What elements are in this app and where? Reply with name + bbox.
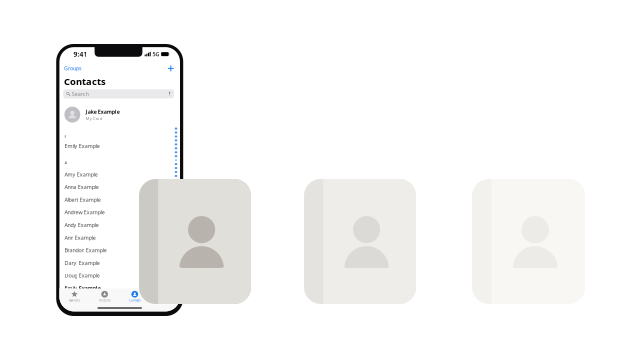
staticText: Contacts <box>64 75 106 87</box>
staticText: Example <box>80 196 101 203</box>
staticText: Contacts <box>129 299 140 302</box>
staticText: Doug <box>64 272 77 279</box>
button[interactable]: Albert <box>59 193 180 206</box>
staticText: Jake Example <box>86 108 120 115</box>
staticText: Groups <box>64 65 82 72</box>
staticText: Andrew <box>64 209 82 216</box>
staticText: Emily <box>64 142 77 150</box>
button[interactable]: Anna <box>59 181 180 193</box>
button[interactable]: Favorites <box>59 288 89 305</box>
staticText: Emily <box>64 285 77 292</box>
staticText: Example <box>77 171 98 178</box>
staticText: Daryl <box>64 259 77 266</box>
staticText: A <box>64 160 67 165</box>
button[interactable]: Keypad <box>150 288 180 305</box>
staticText: 5G <box>152 51 159 58</box>
button[interactable]: Groups <box>64 64 90 72</box>
staticText: Example <box>79 272 100 279</box>
staticText: 9:41 <box>73 50 87 59</box>
staticText: Example <box>84 209 105 216</box>
button[interactable]: Amy <box>59 168 180 181</box>
button[interactable]: Recents <box>90 288 120 305</box>
staticText: Search <box>72 90 89 97</box>
staticText: Brandon <box>64 247 84 254</box>
staticText: Favorites <box>69 299 80 302</box>
button[interactable]: Add contact <box>166 64 175 73</box>
button[interactable]: Emily <box>59 282 180 295</box>
button[interactable]: Andrew <box>59 206 180 219</box>
staticText: Amy <box>64 171 75 178</box>
button[interactable]: Search <box>63 89 174 98</box>
button[interactable]: Daryl <box>59 257 180 269</box>
button[interactable]: Brandon <box>59 244 180 257</box>
staticText: Example <box>79 142 100 150</box>
button[interactable]: Alphabet index <box>174 128 178 232</box>
staticText: Example <box>78 183 99 190</box>
staticText: Example <box>75 234 96 241</box>
button[interactable]: Contacts <box>120 288 150 305</box>
staticText: Albert <box>64 196 78 203</box>
staticText: E <box>64 134 66 139</box>
staticText: Anna <box>64 183 76 190</box>
button[interactable]: Emily <box>59 140 180 152</box>
button[interactable]: Ann <box>59 231 180 244</box>
staticText: Recents <box>99 299 110 302</box>
button[interactable]: Jake Example <box>64 105 180 124</box>
button[interactable]: Doug <box>59 269 180 282</box>
staticText: My Card <box>86 116 102 121</box>
staticText: Ann <box>64 234 73 241</box>
button[interactable]: Andy <box>59 219 180 231</box>
staticText: Andy <box>64 221 76 228</box>
staticText: Example <box>86 247 107 254</box>
staticText: Example <box>79 285 101 292</box>
staticText: Example <box>78 221 99 228</box>
staticText: Example <box>79 259 100 266</box>
